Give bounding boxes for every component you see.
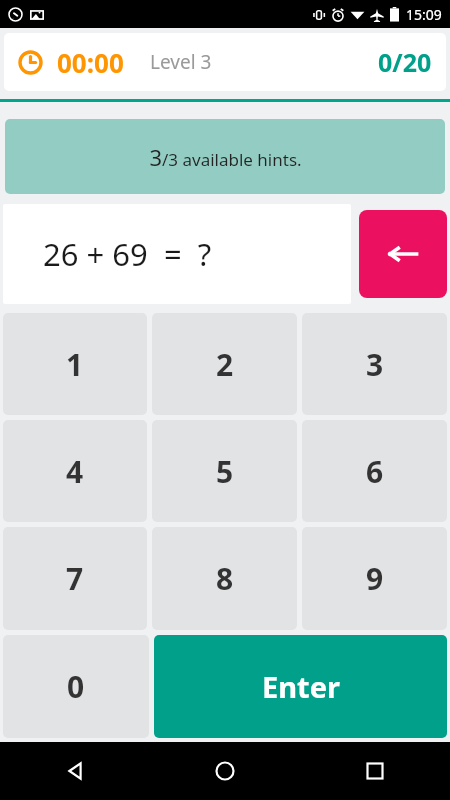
staticText: 0/20 — [378, 45, 432, 79]
staticText: 2 — [216, 344, 234, 385]
button[interactable]: 3 — [302, 313, 447, 415]
staticText: 5 — [216, 451, 234, 492]
button[interactable]: 4 — [3, 420, 147, 522]
staticText: 3/3 available hints. — [149, 142, 302, 172]
button[interactable]: 7 — [3, 527, 147, 630]
button[interactable]: 6 — [302, 420, 447, 522]
staticText: 3 — [366, 344, 384, 385]
staticText: 15:09 — [406, 5, 442, 24]
button[interactable]: Recent apps — [300, 742, 450, 800]
staticText: 9 — [366, 558, 384, 599]
staticText: 8 — [216, 558, 234, 599]
staticText: 7 — [66, 558, 84, 599]
staticText: 4 — [66, 451, 84, 492]
staticText: 00:00 — [57, 45, 124, 80]
button[interactable]: 2 — [152, 313, 297, 415]
staticText: 0 — [67, 666, 85, 707]
staticText: 6 — [366, 451, 384, 492]
button[interactable]: 9 — [302, 527, 447, 630]
button[interactable]: Back — [0, 742, 150, 800]
button[interactable]: 0 — [3, 635, 149, 738]
staticText: 26 + 69 = ? — [43, 233, 212, 275]
button[interactable]: 1 — [3, 313, 147, 415]
staticText: Level 3 — [150, 49, 212, 75]
staticText: 1 — [66, 344, 84, 385]
button[interactable]: Backspace — [359, 210, 447, 298]
button[interactable]: Home — [150, 742, 300, 800]
button[interactable]: Enter — [154, 635, 447, 738]
button[interactable]: 3/3 available hints. — [5, 119, 445, 194]
button[interactable]: 8 — [152, 527, 297, 630]
button[interactable]: 00:00 — [4, 33, 446, 91]
button[interactable]: 5 — [152, 420, 297, 522]
staticText: Enter — [262, 667, 340, 706]
